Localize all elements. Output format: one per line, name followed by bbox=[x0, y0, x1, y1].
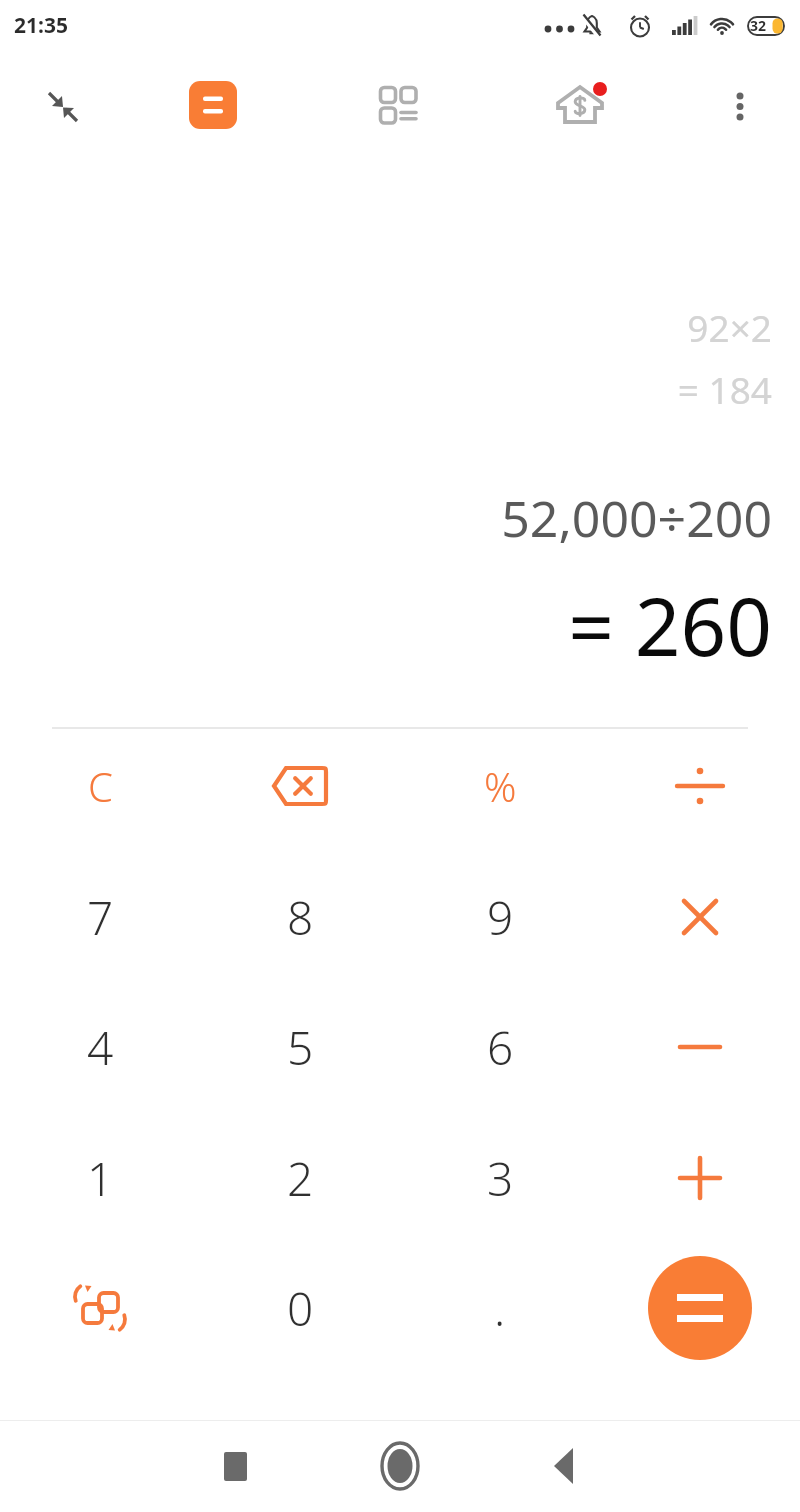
staticText: = 260 bbox=[568, 570, 772, 679]
staticText: 9 bbox=[487, 886, 514, 949]
staticText: 2 bbox=[287, 1147, 314, 1210]
staticText: 92×2 bbox=[687, 302, 772, 352]
button[interactable]: C bbox=[0, 721, 200, 851]
button[interactable]: Equals bbox=[600, 1243, 800, 1373]
button[interactable]: . bbox=[400, 1243, 600, 1373]
button[interactable]: Divide bbox=[600, 721, 800, 851]
staticText: = 184 bbox=[677, 364, 772, 414]
button[interactable]: % bbox=[400, 721, 600, 851]
staticText: 52,000÷200 bbox=[501, 484, 772, 552]
button[interactable]: Converters bbox=[363, 69, 435, 141]
button[interactable]: 7 bbox=[0, 852, 200, 982]
button[interactable]: Backspace bbox=[200, 721, 400, 851]
button[interactable]: 9 bbox=[400, 852, 600, 982]
staticText: % bbox=[484, 759, 517, 813]
button[interactable]: Calculator bbox=[177, 69, 249, 141]
button[interactable]: Loan calculator bbox=[545, 67, 621, 143]
button[interactable]: Home bbox=[360, 1426, 440, 1506]
staticText: 0 bbox=[287, 1277, 314, 1340]
staticText: 5 bbox=[287, 1016, 314, 1079]
staticText: 7 bbox=[87, 886, 114, 949]
staticText: 21:35 bbox=[14, 11, 68, 40]
button[interactable]: 6 bbox=[400, 982, 600, 1112]
button[interactable]: Back bbox=[525, 1426, 605, 1506]
button[interactable]: 1 bbox=[0, 1113, 200, 1243]
staticText: 1 bbox=[87, 1147, 114, 1210]
button[interactable]: More options bbox=[704, 69, 776, 141]
button[interactable]: Swap units bbox=[0, 1243, 200, 1373]
button[interactable]: 3 bbox=[400, 1113, 600, 1243]
staticText: . bbox=[494, 1277, 506, 1340]
button[interactable]: Multiply bbox=[600, 852, 800, 982]
button[interactable]: 8 bbox=[200, 852, 400, 982]
button[interactable]: Collapse bbox=[28, 72, 94, 138]
button[interactable]: Subtract bbox=[600, 982, 800, 1112]
staticText: 4 bbox=[87, 1016, 114, 1079]
staticText: 3 bbox=[487, 1147, 514, 1210]
button[interactable]: 2 bbox=[200, 1113, 400, 1243]
button[interactable]: Recents bbox=[195, 1426, 275, 1506]
staticText: 6 bbox=[487, 1016, 514, 1079]
staticText: 32 bbox=[750, 16, 767, 35]
staticText: C bbox=[88, 759, 113, 813]
button[interactable]: 5 bbox=[200, 982, 400, 1112]
button[interactable]: 0 bbox=[200, 1243, 400, 1373]
button[interactable]: Add bbox=[600, 1113, 800, 1243]
button[interactable]: 4 bbox=[0, 982, 200, 1112]
staticText: 8 bbox=[287, 886, 314, 949]
